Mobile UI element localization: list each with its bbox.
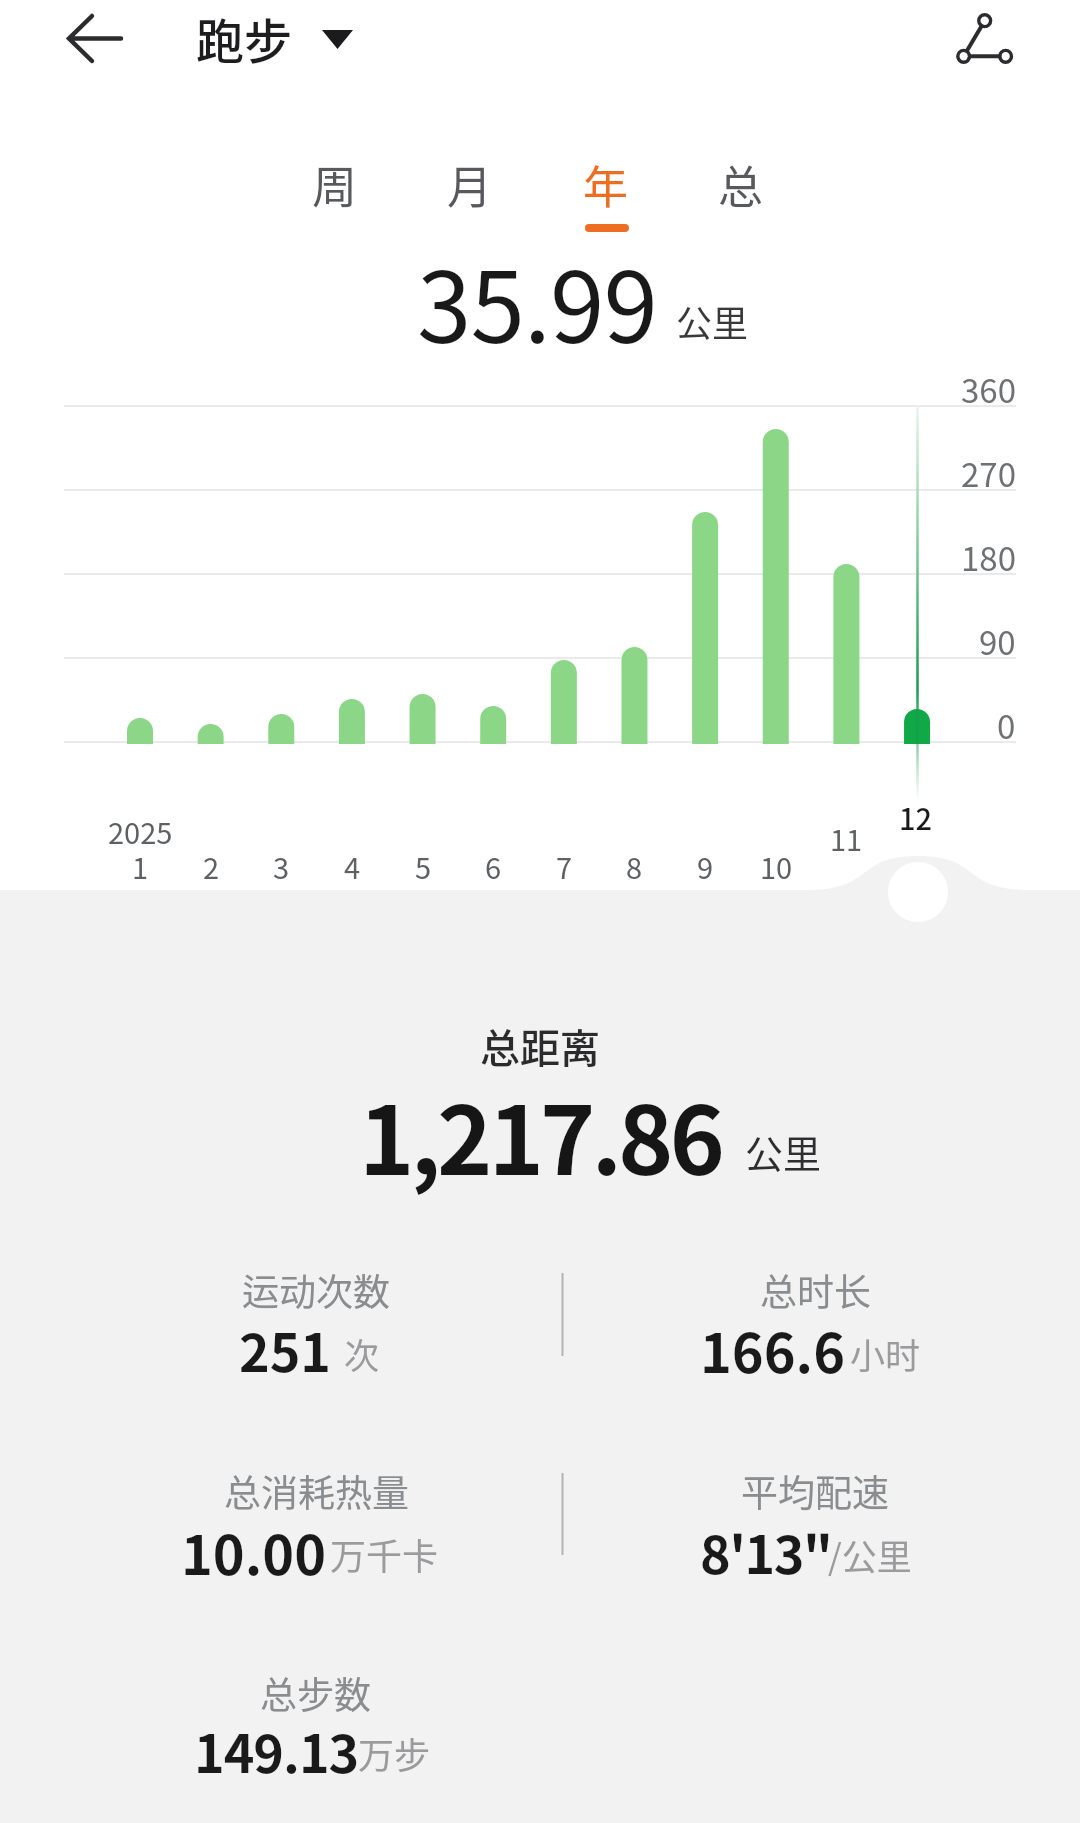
staticText: 总步数 <box>260 1666 371 1720</box>
staticText: 6 <box>485 845 502 887</box>
staticText: 2025 <box>108 810 173 852</box>
staticText: 2 <box>203 845 220 887</box>
staticText: 总 <box>718 152 764 217</box>
staticText: 年 <box>583 152 629 217</box>
staticText: 小时 <box>850 1328 921 1379</box>
staticText: 270 <box>961 449 1016 497</box>
button[interactable]: 周 <box>285 149 385 219</box>
staticText: 4 <box>344 845 361 887</box>
button[interactable] <box>947 2 1023 78</box>
staticText: 180 <box>961 533 1016 581</box>
staticText: 运动次数 <box>242 1263 390 1317</box>
staticText: 公里 <box>676 295 749 347</box>
staticText: 总消耗热量 <box>224 1464 409 1518</box>
button[interactable]: 跑步 <box>196 3 293 73</box>
button[interactable] <box>888 862 948 922</box>
staticText: 9 <box>697 845 714 887</box>
staticText: 万千卡 <box>330 1528 439 1580</box>
staticText: 总距离 <box>480 1017 600 1075</box>
staticText: 跑步 <box>196 3 293 73</box>
staticText: 35.99 <box>417 229 657 371</box>
button[interactable]: 年 <box>556 149 656 219</box>
staticText: 166.6 <box>700 1310 845 1388</box>
button[interactable]: 月 <box>420 149 520 219</box>
staticText: 251 <box>239 1312 332 1387</box>
staticText: 周 <box>312 152 358 217</box>
staticText: 10 <box>760 845 793 887</box>
staticText: 11 <box>830 817 863 859</box>
staticText: 1,217.86 <box>359 1066 721 1202</box>
staticText: 3 <box>273 845 290 887</box>
staticText: 万步 <box>358 1727 431 1779</box>
staticText: 12 <box>899 796 933 838</box>
staticText: 1 <box>132 845 149 887</box>
staticText: 0 <box>997 701 1016 749</box>
staticText: 7 <box>556 845 573 887</box>
staticText: 月 <box>447 152 493 217</box>
staticText: 10.00 <box>181 1512 326 1590</box>
staticText: 公里 <box>745 1124 822 1179</box>
button[interactable]: 总 <box>691 149 791 219</box>
staticText: /公里 <box>828 1529 912 1580</box>
staticText: 次 <box>344 1328 380 1379</box>
staticText: 149.13 <box>194 1713 359 1788</box>
staticText: 8'13" <box>700 1514 832 1589</box>
staticText: 90 <box>979 617 1016 665</box>
staticText: 8 <box>626 845 643 887</box>
button[interactable] <box>55 0 135 76</box>
staticText: 总时长 <box>760 1263 871 1317</box>
staticText: 360 <box>961 365 1016 413</box>
staticText: 5 <box>415 845 432 887</box>
staticText: 平均配速 <box>741 1464 889 1518</box>
